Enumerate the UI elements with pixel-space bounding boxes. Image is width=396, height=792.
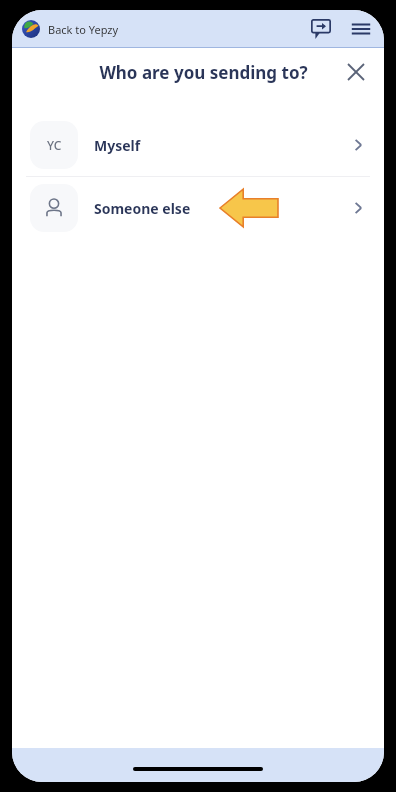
staticText: Who are you sending to? [99, 61, 308, 84]
button[interactable]: Send message [308, 16, 334, 42]
button[interactable]: YC [12, 114, 384, 176]
button[interactable]: Back to Yepzy [22, 20, 119, 38]
button[interactable]: Close [340, 56, 372, 88]
staticText: Myself [94, 136, 141, 155]
staticText: Someone else [94, 199, 191, 218]
button[interactable]: Someone else [12, 177, 384, 239]
staticText: Back to Yepzy [48, 22, 119, 37]
staticText: YC [47, 137, 62, 153]
button[interactable]: Menu [348, 16, 374, 42]
